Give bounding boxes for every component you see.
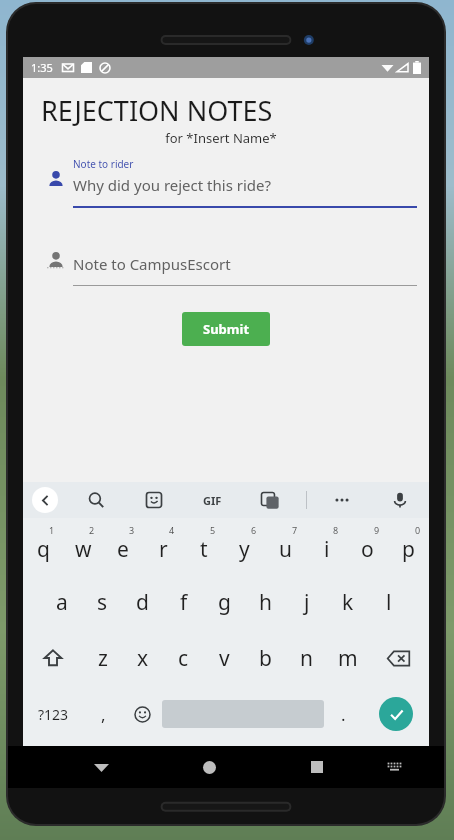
staticText: f bbox=[180, 588, 188, 617]
button[interactable]: Enter bbox=[363, 686, 429, 742]
staticText: l bbox=[386, 588, 392, 617]
staticText: x bbox=[137, 644, 149, 673]
staticText: o bbox=[361, 535, 374, 564]
button[interactable]: n bbox=[286, 630, 327, 686]
staticText: 7 bbox=[292, 524, 298, 536]
button[interactable]: Voice input bbox=[371, 482, 429, 518]
button[interactable]: More options bbox=[313, 482, 371, 518]
staticText: e bbox=[117, 535, 129, 564]
button[interactable]: a bbox=[42, 574, 82, 630]
staticText: s bbox=[97, 588, 108, 617]
button[interactable]: 5 bbox=[183, 518, 224, 574]
staticText: GIF bbox=[203, 493, 222, 508]
staticText: v bbox=[219, 644, 230, 673]
button[interactable]: 4 bbox=[143, 518, 183, 574]
staticText: Note to CampusEscort bbox=[73, 254, 231, 274]
button[interactable]: 0 bbox=[388, 518, 429, 574]
button[interactable]: d bbox=[122, 574, 163, 630]
button[interactable]: Home bbox=[189, 747, 229, 787]
button[interactable]: l bbox=[368, 574, 409, 630]
button[interactable]: GIF bbox=[183, 482, 241, 518]
button[interactable]: , bbox=[84, 686, 123, 742]
staticText: 1 bbox=[49, 524, 55, 536]
button[interactable]: Emoji bbox=[123, 686, 162, 742]
button[interactable]: z bbox=[83, 630, 123, 686]
button[interactable]: 2 bbox=[63, 518, 103, 574]
staticText: r bbox=[159, 535, 168, 564]
staticText: n bbox=[300, 644, 313, 673]
staticText: q bbox=[37, 535, 50, 564]
staticText: . bbox=[341, 703, 346, 726]
staticText: 1:35 bbox=[31, 60, 53, 75]
staticText: b bbox=[259, 644, 272, 673]
staticText: ?123 bbox=[38, 705, 69, 724]
button[interactable]: 9 bbox=[347, 518, 388, 574]
button[interactable]: Shift bbox=[23, 630, 83, 686]
button[interactable]: Why did you reject this ride? bbox=[73, 172, 417, 198]
button[interactable]: 7 bbox=[265, 518, 306, 574]
staticText: z bbox=[98, 644, 108, 673]
staticText: p bbox=[402, 535, 415, 564]
button[interactable]: c bbox=[163, 630, 204, 686]
button[interactable]: Note to CampusEscort bbox=[73, 251, 417, 277]
staticText: t bbox=[200, 535, 208, 564]
staticText: g bbox=[218, 588, 231, 617]
staticText: 9 bbox=[374, 524, 380, 536]
button[interactable]: ?123 bbox=[23, 686, 84, 742]
staticText: h bbox=[259, 588, 272, 617]
button[interactable]: h bbox=[245, 574, 286, 630]
button[interactable]: Search bbox=[67, 482, 125, 518]
button[interactable]: Switch keyboard bbox=[378, 751, 410, 783]
staticText: 2 bbox=[89, 524, 95, 536]
staticText: u bbox=[279, 535, 292, 564]
button[interactable]: f bbox=[163, 574, 204, 630]
button[interactable]: g bbox=[204, 574, 245, 630]
staticText: Note to rider bbox=[73, 157, 134, 171]
button[interactable]: Stickers bbox=[125, 482, 183, 518]
staticText: i bbox=[324, 535, 330, 564]
button[interactable]: b bbox=[245, 630, 286, 686]
staticText: y bbox=[239, 535, 250, 564]
staticText: for *Insert Name* bbox=[23, 129, 419, 147]
staticText: k bbox=[342, 588, 354, 617]
button[interactable]: Translate bbox=[241, 482, 299, 518]
staticText: 8 bbox=[333, 524, 339, 536]
staticText: w bbox=[75, 535, 92, 564]
staticText: m bbox=[338, 644, 358, 673]
button[interactable]: s bbox=[82, 574, 122, 630]
staticText: Submit bbox=[203, 320, 250, 338]
staticText: REJECTION NOTES bbox=[41, 92, 273, 129]
button[interactable]: Back bbox=[23, 482, 67, 518]
button[interactable]: m bbox=[327, 630, 368, 686]
button[interactable]: Hide keyboard bbox=[81, 747, 121, 787]
staticText: 6 bbox=[251, 524, 257, 536]
button[interactable]: k bbox=[327, 574, 368, 630]
button[interactable]: . bbox=[324, 686, 363, 742]
staticText: a bbox=[56, 588, 68, 617]
button[interactable]: 3 bbox=[103, 518, 143, 574]
button[interactable]: Recent apps bbox=[297, 747, 337, 787]
staticText: 5 bbox=[210, 524, 216, 536]
staticText: 0 bbox=[415, 524, 421, 536]
button[interactable]: j bbox=[286, 574, 327, 630]
button[interactable]: 6 bbox=[224, 518, 265, 574]
staticText: , bbox=[101, 703, 106, 726]
button[interactable]: 1 bbox=[23, 518, 63, 574]
staticText: 3 bbox=[129, 524, 135, 536]
button[interactable]: Submit bbox=[182, 312, 270, 346]
staticText: c bbox=[178, 644, 189, 673]
button[interactable]: v bbox=[204, 630, 245, 686]
staticText: d bbox=[136, 588, 149, 617]
staticText: j bbox=[304, 588, 310, 617]
staticText: 4 bbox=[169, 524, 175, 536]
button[interactable]: 8 bbox=[306, 518, 347, 574]
staticText: Why did you reject this ride? bbox=[73, 175, 271, 195]
button[interactable]: x bbox=[123, 630, 163, 686]
button[interactable]: Backspace bbox=[368, 630, 429, 686]
